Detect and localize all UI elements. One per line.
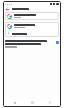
button[interactable] (5, 30, 59, 37)
button[interactable]: Home (27, 99, 37, 106)
button[interactable]: Navigate up (5, 7, 10, 12)
button[interactable] (5, 22, 59, 30)
button[interactable]: Checked (56, 41, 59, 44)
button[interactable]: Back (44, 99, 54, 106)
button[interactable]: Recent apps (10, 99, 20, 106)
button[interactable] (5, 12, 59, 20)
button[interactable]: Checked (5, 40, 59, 48)
